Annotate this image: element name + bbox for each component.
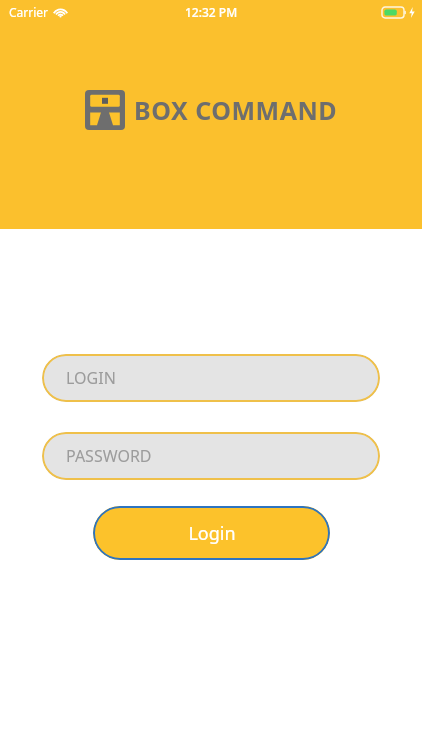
button[interactable]: PASSWORD [42,432,380,480]
staticText: PASSWORD [66,445,152,467]
button[interactable]: Login [93,506,330,560]
staticText: 12:32 PM [185,4,238,20]
staticText: Login [188,521,236,546]
staticText: BOX COMMAND [134,93,338,127]
staticText: LOGIN [66,367,116,389]
button[interactable]: LOGIN [42,354,380,402]
staticText: Carrier [9,4,49,20]
